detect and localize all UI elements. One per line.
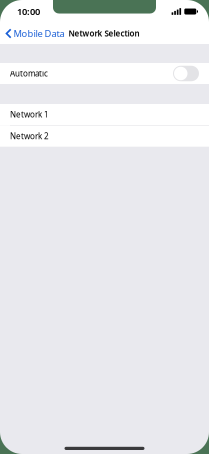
staticText: Network 1 (10, 109, 49, 120)
button[interactable]: Mobile Data (0, 24, 64, 43)
button[interactable]: Network 2 (0, 126, 209, 147)
button[interactable]: Network 1 (0, 104, 209, 125)
staticText: Automatic (10, 68, 48, 79)
button[interactable]: Automatic (0, 63, 209, 84)
staticText: Network 2 (10, 131, 49, 141)
staticText: Mobile Data (13, 27, 64, 40)
staticText: 10:00 (17, 5, 40, 18)
staticText: Network Selection (68, 28, 139, 39)
